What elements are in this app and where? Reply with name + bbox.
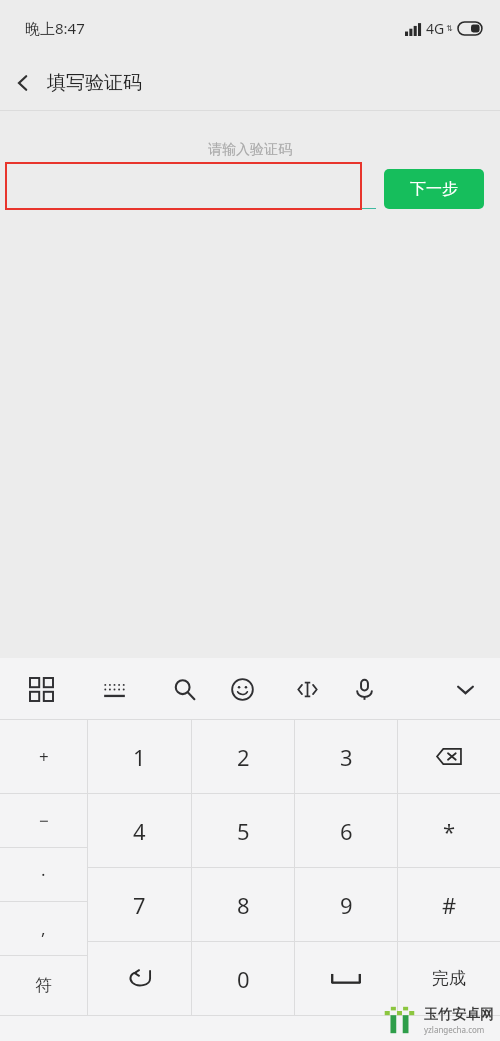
button[interactable]: Hide keyboard <box>441 665 489 713</box>
button[interactable]: 6 <box>295 794 397 867</box>
staticText: 符 <box>35 975 52 996</box>
button[interactable]: Apps <box>17 665 65 713</box>
staticText: 3 <box>340 742 353 772</box>
staticText: 9 <box>340 890 353 920</box>
staticText: yzlangecha.com <box>424 1024 485 1035</box>
button[interactable]: 3 <box>295 720 397 793</box>
button[interactable]: Search <box>160 665 208 713</box>
button[interactable]: 1 <box>88 720 191 793</box>
button[interactable]: 完成 <box>398 942 500 1015</box>
staticText: * <box>443 816 456 846</box>
button[interactable]: 2 <box>192 720 294 793</box>
staticText: 0 <box>237 964 250 994</box>
staticText: ⇅ <box>446 24 453 33</box>
button[interactable]: 符 <box>0 956 87 1015</box>
staticText: 1 <box>133 742 146 772</box>
button[interactable]: 4 <box>88 794 191 867</box>
button[interactable]: 9 <box>295 868 397 941</box>
button[interactable]: # <box>398 868 500 941</box>
button[interactable]: * <box>398 794 500 867</box>
staticText: 2 <box>237 742 250 772</box>
button[interactable]: − <box>0 794 87 847</box>
staticText: + <box>39 745 49 768</box>
button[interactable]: Keyboard layout <box>90 665 138 713</box>
button[interactable]: Enter <box>88 942 191 1015</box>
staticText: 玉竹安卓网 <box>424 1006 494 1024</box>
button[interactable]: + <box>0 720 87 793</box>
button[interactable]: 7 <box>88 868 191 941</box>
button[interactable]: Move cursor <box>283 665 331 713</box>
button[interactable]: Emoji <box>218 665 266 713</box>
button[interactable]: 下一步 <box>384 169 484 209</box>
staticText: 填写验证码 <box>47 71 142 95</box>
staticText: 请输入验证码 <box>208 141 292 159</box>
staticText: 4G <box>426 19 445 38</box>
button[interactable]: , <box>0 902 87 955</box>
staticText: − <box>39 809 49 832</box>
button[interactable]: 5 <box>192 794 294 867</box>
staticText: 4 <box>133 816 146 846</box>
staticText: · <box>41 863 46 886</box>
staticText: 8 <box>237 890 250 920</box>
staticText: # <box>442 890 457 920</box>
button[interactable]: Back <box>0 60 46 106</box>
button[interactable]: Delete <box>398 720 500 793</box>
button[interactable]: 8 <box>192 868 294 941</box>
button[interactable]: · <box>0 848 87 901</box>
button[interactable] <box>5 162 362 210</box>
button[interactable]: Voice input <box>340 665 388 713</box>
staticText: , <box>41 917 46 940</box>
button[interactable]: 0 <box>192 942 294 1015</box>
staticText: 5 <box>237 816 250 846</box>
staticText: 6 <box>340 816 353 846</box>
button[interactable]: Space <box>295 942 397 1015</box>
staticText: 晚上8:47 <box>25 18 85 38</box>
staticText: 7 <box>133 890 146 920</box>
staticText: 下一步 <box>410 179 458 199</box>
staticText: 完成 <box>432 968 466 989</box>
